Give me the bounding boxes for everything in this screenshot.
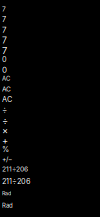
staticText: +/− (2, 155, 12, 163)
staticText: AC (2, 75, 10, 82)
staticText: 211÷206 (2, 165, 28, 173)
staticText: 7 (2, 35, 7, 45)
staticText: AC (2, 85, 11, 93)
staticText: 0 (2, 55, 7, 64)
staticText: Rad (2, 202, 13, 209)
staticText: 0 (2, 65, 7, 75)
staticText: 211÷206 (2, 177, 31, 186)
staticText: × (2, 125, 8, 136)
staticText: ÷ (2, 115, 8, 126)
staticText: 7 (2, 25, 7, 35)
staticText: + (2, 135, 8, 146)
staticText: ÷ (2, 105, 7, 115)
staticText: 7 (2, 5, 6, 13)
staticText: 7 (2, 15, 6, 24)
staticText: % (2, 145, 9, 154)
staticText: AC (2, 95, 12, 104)
staticText: 7 (2, 45, 7, 56)
staticText: Rad (2, 190, 11, 196)
